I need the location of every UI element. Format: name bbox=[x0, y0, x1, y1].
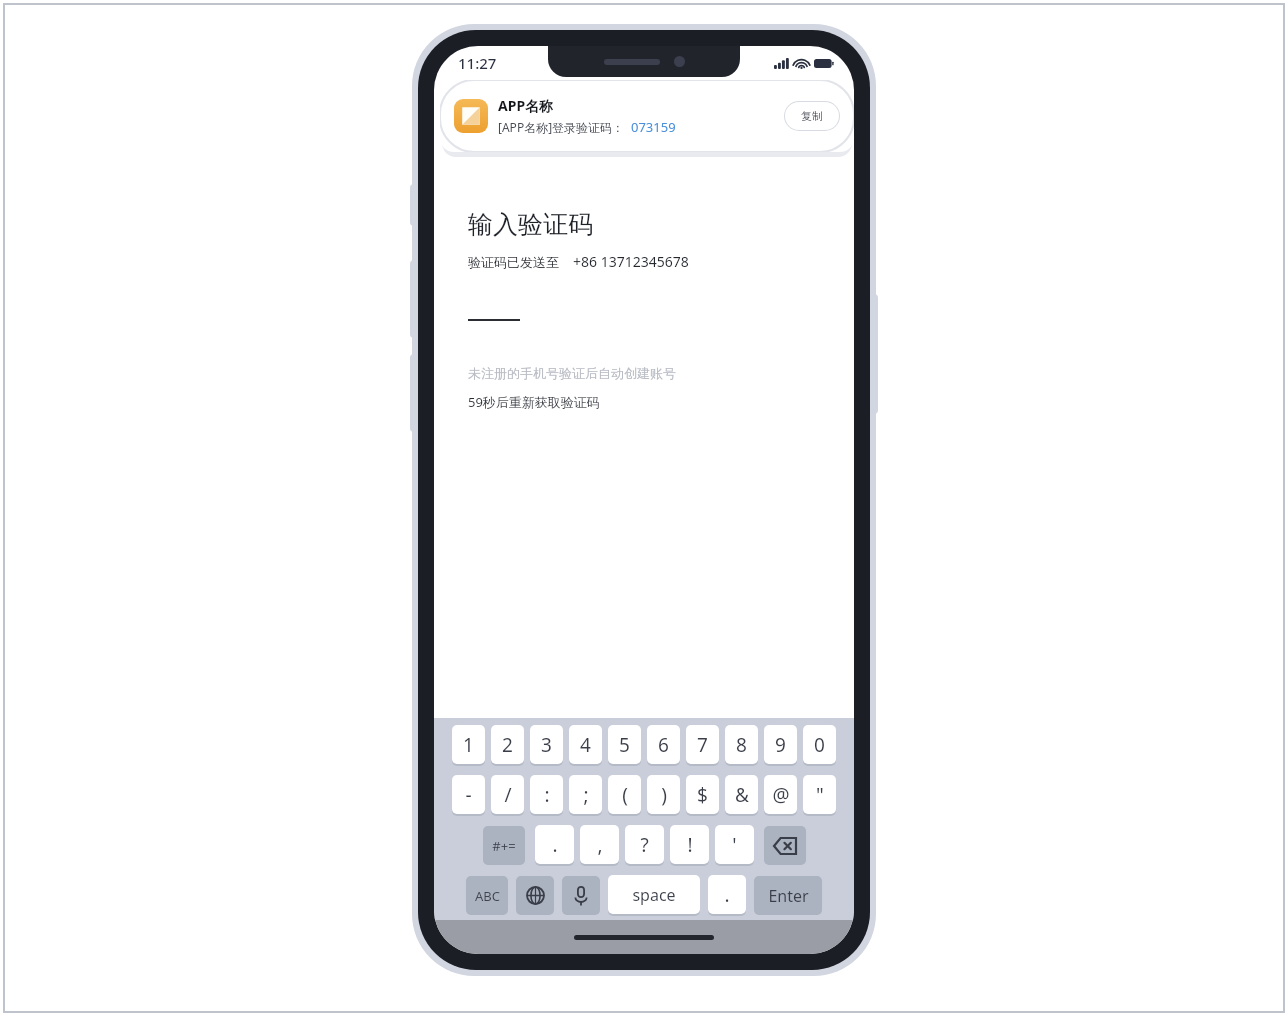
button[interactable]: & bbox=[725, 775, 758, 814]
staticText: / bbox=[504, 782, 512, 808]
staticText: Enter bbox=[768, 885, 809, 907]
button[interactable]: 0 bbox=[803, 725, 836, 764]
button[interactable]: 9 bbox=[764, 725, 797, 764]
staticText: 1 bbox=[463, 732, 474, 758]
staticText: ABC bbox=[475, 887, 500, 905]
button[interactable]: / bbox=[491, 775, 524, 814]
staticText: 11:27 bbox=[458, 53, 497, 73]
staticText: 复制 bbox=[801, 109, 823, 123]
staticText: - bbox=[465, 782, 472, 808]
button[interactable]: 2 bbox=[491, 725, 524, 764]
button[interactable]: Enter bbox=[754, 876, 822, 915]
staticText: APP名称 bbox=[498, 96, 554, 115]
staticText: ; bbox=[583, 782, 589, 808]
staticText: 8 bbox=[736, 732, 747, 758]
button[interactable]: 6 bbox=[647, 725, 680, 764]
button[interactable]: space bbox=[608, 875, 700, 914]
staticText: 未注册的手机号验证后自动创建账号 bbox=[468, 365, 676, 381]
staticText: +86 13712345678 bbox=[573, 252, 689, 271]
staticText: 7 bbox=[697, 732, 708, 758]
button[interactable]: Backspace bbox=[764, 826, 806, 865]
button[interactable]: 59秒后重新获取验证码 bbox=[468, 393, 600, 411]
staticText: 0 bbox=[814, 732, 825, 758]
button[interactable]: 7 bbox=[686, 725, 719, 764]
staticText: ' bbox=[732, 832, 737, 858]
staticText: & bbox=[735, 782, 749, 808]
staticText: ) bbox=[661, 782, 667, 808]
button[interactable]: ? bbox=[625, 825, 664, 864]
button[interactable]: 3 bbox=[530, 725, 563, 764]
staticText: 9 bbox=[775, 732, 786, 758]
staticText: 5 bbox=[619, 732, 630, 758]
staticText: #+= bbox=[492, 837, 516, 855]
staticText: 59秒后重新获取验证码 bbox=[468, 393, 600, 411]
button[interactable]: $ bbox=[686, 775, 719, 814]
staticText: 6 bbox=[658, 732, 669, 758]
button[interactable]: , bbox=[580, 825, 619, 864]
button[interactable]: - bbox=[452, 775, 485, 814]
button[interactable]: ( bbox=[608, 775, 641, 814]
staticText: 输入验证码 bbox=[468, 209, 593, 240]
button[interactable]: 8 bbox=[725, 725, 758, 764]
button[interactable]: . bbox=[708, 875, 746, 914]
button[interactable]: ) bbox=[647, 775, 680, 814]
staticText: : bbox=[544, 782, 550, 808]
button[interactable]: . bbox=[535, 825, 574, 864]
button[interactable]: : bbox=[530, 775, 563, 814]
staticText: 4 bbox=[580, 732, 591, 758]
button[interactable]: Voice input bbox=[562, 876, 600, 915]
button[interactable]: " bbox=[803, 775, 836, 814]
staticText: , bbox=[597, 832, 603, 858]
button[interactable]: @ bbox=[764, 775, 797, 814]
staticText: @ bbox=[772, 782, 790, 808]
button[interactable]: ! bbox=[670, 825, 709, 864]
staticText: " bbox=[816, 782, 824, 808]
staticText: 验证码已发送至 bbox=[468, 254, 559, 270]
staticText: 073159 bbox=[631, 118, 676, 136]
button[interactable]: ' bbox=[715, 825, 754, 864]
button[interactable]: #+= bbox=[483, 826, 525, 865]
staticText: $ bbox=[697, 782, 708, 808]
button[interactable]: Change keyboard language bbox=[516, 876, 554, 915]
staticText: space bbox=[632, 884, 676, 906]
button[interactable]: 复制 bbox=[784, 101, 840, 131]
button[interactable]: ABC bbox=[466, 876, 508, 915]
staticText: ? bbox=[640, 832, 649, 858]
button[interactable]: 1 bbox=[452, 725, 485, 764]
button[interactable]: 4 bbox=[569, 725, 602, 764]
staticText: ( bbox=[622, 782, 628, 808]
button[interactable]: APP名称 bbox=[440, 80, 854, 152]
staticText: . bbox=[552, 832, 558, 858]
staticText: . bbox=[724, 882, 730, 908]
button[interactable]: 5 bbox=[608, 725, 641, 764]
button[interactable]: ; bbox=[569, 775, 602, 814]
staticText: [APP名称]登录验证码： bbox=[498, 119, 625, 135]
staticText: ! bbox=[687, 832, 693, 858]
staticText: 2 bbox=[502, 732, 513, 758]
staticText: 3 bbox=[541, 732, 552, 758]
